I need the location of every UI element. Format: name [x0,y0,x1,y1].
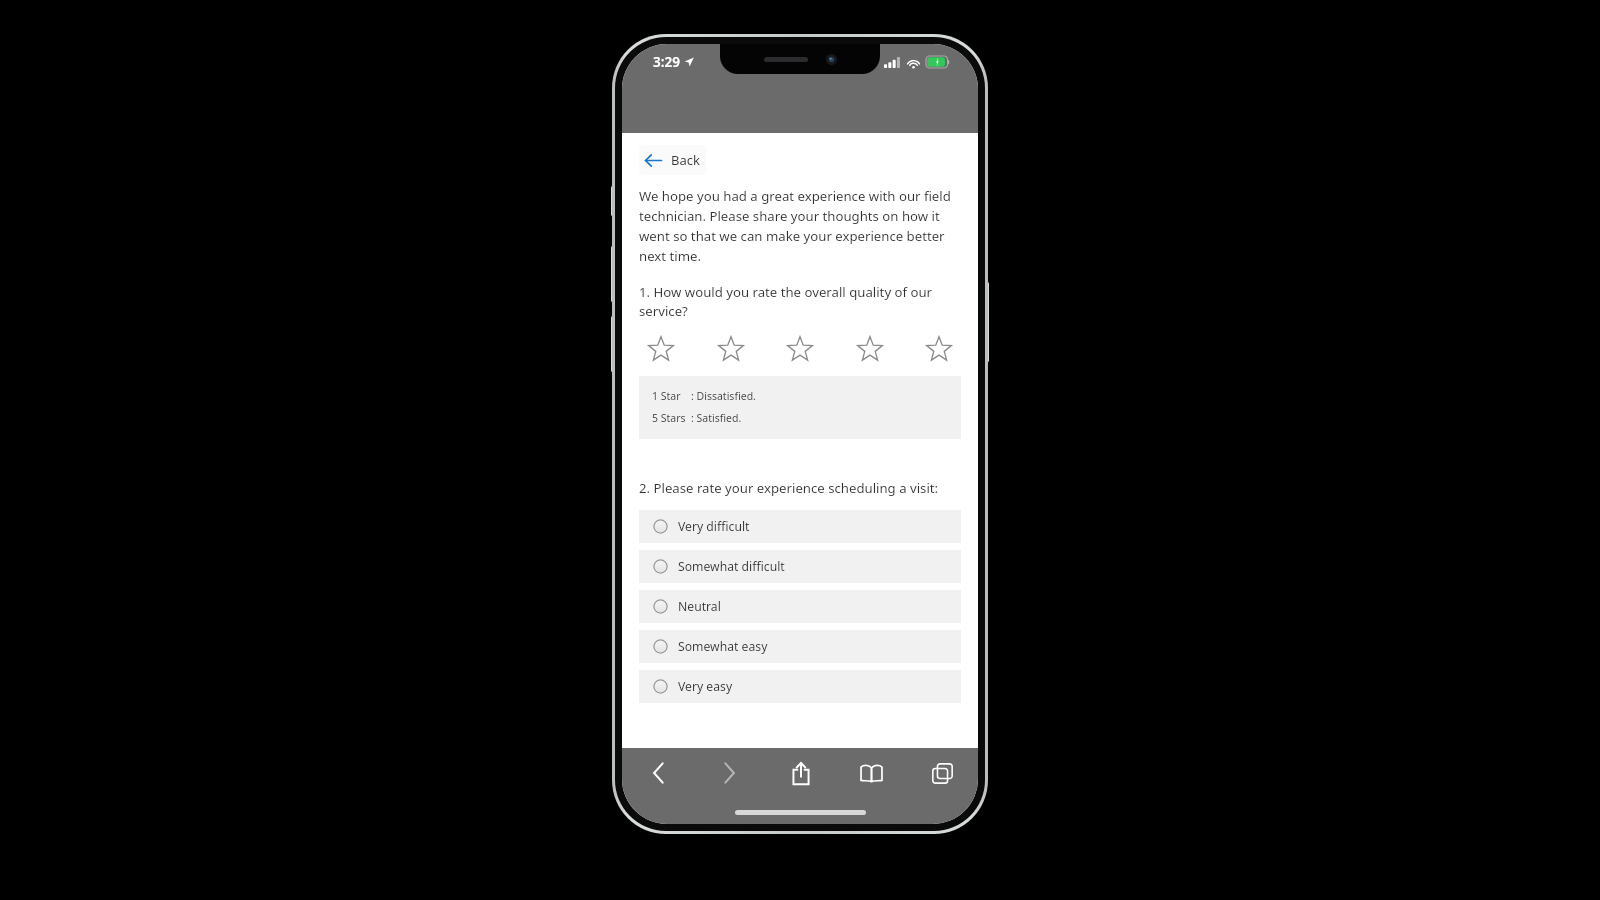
button[interactable]: Back [645,151,700,169]
button[interactable]: Back [622,748,694,798]
button[interactable]: Somewhat difficult [639,550,961,583]
button[interactable]: Share [765,748,836,798]
staticText: 1. How would you rate the overall qualit… [639,283,961,320]
staticText: 3:29 [653,53,680,71]
staticText: Very easy [678,678,733,695]
button[interactable]: Rate 1 stars [644,332,678,366]
button[interactable]: Bookmarks [836,748,907,798]
staticText: : Satisfied. [691,411,742,425]
staticText: Back [671,151,700,169]
button[interactable]: Rate 2 stars [714,332,748,366]
staticText: Neutral [678,598,721,615]
button[interactable]: Very easy [639,670,961,703]
staticText: We hope you had a great experience with … [639,187,961,265]
button[interactable]: Rate 4 stars [853,332,887,366]
staticText: : Dissatisfied. [691,389,756,403]
staticText: Somewhat difficult [678,558,785,575]
staticText: Somewhat easy [678,638,768,655]
button[interactable]: Neutral [639,590,961,623]
staticText: 5 Stars [652,411,686,425]
button[interactable]: Rate 5 stars [922,332,956,366]
staticText: Very difficult [678,518,750,535]
staticText: 1 Star [652,389,681,403]
button[interactable]: Rate 3 stars [783,332,817,366]
button[interactable]: Very difficult [639,510,961,543]
button[interactable]: Forward [694,748,765,798]
button[interactable]: Tabs [907,748,978,798]
button[interactable]: Somewhat easy [639,630,961,663]
staticText: 2. Please rate your experience schedulin… [639,479,961,497]
